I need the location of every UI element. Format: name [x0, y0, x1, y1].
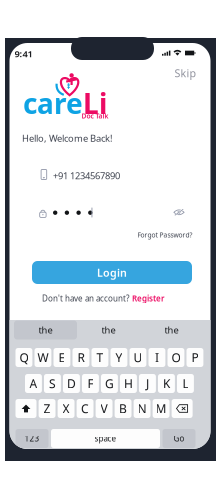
staticText: L	[182, 375, 188, 391]
staticText: Don't have an account?	[42, 293, 129, 304]
staticText: Forgot Password?	[137, 231, 192, 239]
button[interactable]: the	[140, 320, 203, 339]
button[interactable]: P	[186, 348, 203, 367]
button[interactable]: M	[153, 399, 169, 418]
staticText: W	[37, 349, 48, 365]
button[interactable]: 123	[15, 429, 48, 448]
staticText: 9:41	[14, 47, 32, 60]
button[interactable]: S	[44, 374, 61, 393]
button[interactable]: E	[53, 348, 70, 367]
staticText: E	[58, 349, 65, 365]
button[interactable]: V	[96, 399, 112, 418]
button[interactable]: space	[51, 429, 160, 448]
button[interactable]: Forgot Password?	[122, 230, 192, 240]
staticText: V	[100, 400, 107, 416]
button[interactable]: Shift	[15, 399, 36, 418]
button[interactable]: Register	[132, 293, 164, 304]
button[interactable]: Z	[39, 399, 55, 418]
button[interactable]: O	[167, 348, 184, 367]
staticText: +91 1234567890	[53, 169, 120, 182]
button[interactable]: H	[120, 374, 137, 393]
staticText: D	[67, 375, 76, 391]
staticText: G	[105, 375, 114, 391]
staticText: F	[87, 375, 93, 391]
button[interactable]: I	[148, 348, 165, 367]
staticText: P	[191, 349, 198, 365]
staticText: the	[38, 324, 52, 336]
staticText: Li	[83, 84, 107, 122]
staticText: Go	[173, 433, 184, 444]
staticText: C	[81, 400, 89, 416]
button[interactable]: Q	[15, 348, 32, 367]
button[interactable]: G	[101, 374, 118, 393]
staticText: Z	[43, 400, 50, 416]
staticText: K	[163, 375, 170, 391]
button[interactable]: Delete	[172, 399, 193, 418]
button[interactable]: L	[177, 374, 194, 393]
button[interactable]: R	[72, 348, 89, 367]
staticText: A	[29, 375, 37, 391]
staticText: Hello, Welcome Back!	[22, 132, 113, 144]
button[interactable]: the	[14, 320, 77, 339]
button[interactable]: K	[158, 374, 175, 393]
button[interactable]: J	[139, 374, 156, 393]
button[interactable]: F	[82, 374, 99, 393]
staticText: Register	[132, 293, 164, 304]
staticText: X	[62, 400, 69, 416]
button[interactable]: Y	[110, 348, 127, 367]
staticText: T	[96, 349, 103, 365]
staticText: Login	[97, 265, 127, 280]
staticText: Y	[115, 349, 122, 365]
button[interactable]: Login	[32, 261, 192, 284]
button[interactable]: D	[63, 374, 80, 393]
button[interactable]: Skip	[163, 66, 196, 79]
staticText: care	[23, 84, 83, 122]
staticText: J	[146, 375, 149, 391]
staticText: R	[77, 349, 84, 365]
staticText: O	[171, 349, 180, 365]
button[interactable]: Go	[162, 429, 195, 448]
staticText: N	[137, 400, 146, 416]
button[interactable]: U	[129, 348, 146, 367]
staticText: Skip	[174, 66, 196, 80]
staticText: space	[94, 433, 116, 444]
staticText: 123	[24, 433, 39, 444]
staticText: the	[101, 324, 115, 336]
button[interactable]: A	[25, 374, 42, 393]
staticText: I	[155, 349, 159, 365]
staticText: Q	[19, 349, 28, 365]
button[interactable]: X	[58, 399, 74, 418]
staticText: the	[164, 324, 178, 336]
staticText: B	[119, 400, 127, 416]
button[interactable]: C	[77, 399, 93, 418]
button[interactable]: W	[34, 348, 51, 367]
staticText: S	[49, 375, 56, 391]
button[interactable]: Show password	[173, 209, 184, 216]
button[interactable]: B	[115, 399, 131, 418]
staticText: Doc Talk	[81, 111, 108, 120]
button[interactable]: N	[134, 399, 150, 418]
staticText: U	[133, 349, 142, 365]
staticText: M	[155, 400, 166, 416]
button[interactable]: the	[77, 320, 140, 339]
staticText: H	[124, 375, 133, 391]
button[interactable]: T	[91, 348, 108, 367]
